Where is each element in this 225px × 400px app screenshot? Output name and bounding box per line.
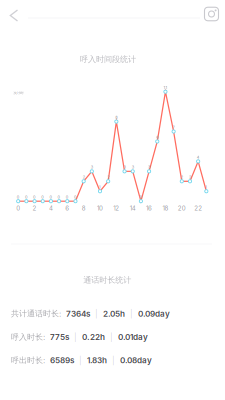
staticText: 20 [178, 205, 186, 212]
button[interactable]: Camera [200, 3, 222, 25]
staticText: 12 [113, 205, 119, 212]
staticText: | [79, 355, 82, 365]
staticText: 1 [205, 185, 207, 189]
staticText: 0 [139, 195, 142, 199]
staticText: 2 [83, 175, 85, 179]
staticText: 0.01day [118, 332, 148, 342]
staticText: 共计通话时长: [11, 309, 61, 319]
staticText: 0.09day [138, 309, 170, 319]
staticText: 2 [33, 205, 37, 212]
staticText: 1 [99, 185, 101, 189]
staticText: | [130, 309, 133, 319]
staticText: 7364s [66, 309, 90, 319]
staticText: 6 [156, 135, 158, 140]
staticText: 通话时长统计 [83, 275, 131, 285]
staticText: 4 [197, 155, 200, 160]
staticText: 2 [181, 175, 183, 179]
staticText: 0 [49, 195, 52, 199]
staticText: 呼入时长: [11, 332, 45, 342]
staticText: 0 [58, 195, 61, 199]
staticText: 0.08day [120, 355, 152, 365]
staticText: 0 [17, 195, 20, 199]
staticText: 2.05h [103, 309, 125, 319]
staticText: 22 [194, 205, 202, 212]
staticText: 6 [65, 205, 69, 212]
staticText: 3 [148, 165, 150, 169]
staticText: 0 [16, 205, 20, 212]
staticText: 0 [74, 195, 77, 199]
staticText: 1.83h [87, 355, 107, 365]
staticText: 18 [162, 205, 168, 212]
staticText: 11 [163, 85, 167, 90]
staticText: 10 [97, 205, 103, 212]
staticText: 14 [130, 205, 136, 212]
staticText: 呼出时长: [11, 355, 45, 365]
staticText: 2 [189, 175, 191, 179]
staticText: 8 [82, 205, 86, 212]
staticText: | [112, 355, 115, 365]
staticText: 次/小时 [13, 91, 23, 95]
staticText: | [110, 332, 113, 342]
staticText: 0.22h [82, 332, 105, 342]
staticText: | [95, 309, 98, 319]
button[interactable]: Back [1, 2, 27, 28]
staticText: 6589s [50, 355, 74, 365]
staticText: 7 [173, 125, 175, 130]
staticText: 3 [132, 165, 134, 169]
staticText: 3 [123, 165, 125, 169]
staticText: 呼入时间段统计 [80, 54, 136, 64]
staticText: 2 [107, 175, 109, 179]
staticText: 8 [115, 115, 117, 120]
staticText: 0 [41, 195, 44, 199]
staticText: 4 [49, 205, 53, 212]
staticText: 0 [33, 195, 36, 199]
staticText: 0 [25, 195, 28, 199]
staticText: 16 [146, 205, 152, 212]
staticText: | [74, 332, 77, 342]
staticText: 775s [50, 332, 69, 342]
staticText: 0 [66, 195, 69, 199]
staticText: 3 [91, 165, 93, 169]
